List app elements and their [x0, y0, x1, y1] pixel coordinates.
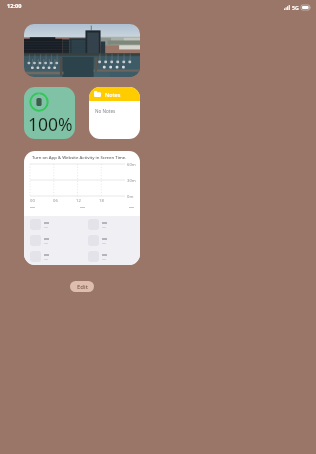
- staticText: 5G: [292, 4, 299, 11]
- staticText: No Notes: [95, 108, 116, 114]
- button[interactable]: Edit: [70, 281, 94, 292]
- staticText: 18: [99, 198, 104, 204]
- button[interactable]: Notes: [89, 87, 140, 139]
- staticText: Notes: [105, 91, 121, 98]
- staticText: 12: [76, 198, 81, 204]
- button[interactable]: 100%: [24, 87, 75, 139]
- staticText: 00: [30, 198, 35, 204]
- button[interactable]: Turn on App & Website Activity in Screen…: [24, 151, 140, 265]
- staticText: 12:00: [7, 2, 22, 10]
- staticText: 0m: [127, 194, 134, 200]
- button[interactable]: Photos widget: harbour photo: [24, 24, 140, 77]
- staticText: Edit: [77, 283, 88, 291]
- staticText: 60m: [127, 162, 136, 168]
- staticText: 100%: [28, 112, 73, 136]
- staticText: 30m: [127, 178, 136, 184]
- staticText: 06: [53, 198, 58, 204]
- staticText: Turn on App & Website Activity in Screen…: [32, 154, 127, 160]
